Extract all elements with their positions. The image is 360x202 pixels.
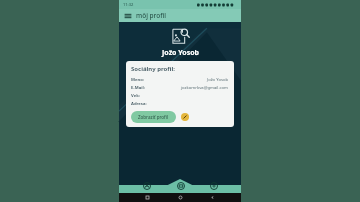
staticText: Adresa: [131,101,147,107]
button[interactable]: Recents [144,194,151,201]
staticText: Jožo Yosob [207,77,229,83]
staticText: E-Mail: [131,85,145,91]
button[interactable]: Settings [208,180,219,191]
staticText: Vek: [131,93,140,99]
button[interactable]: Messages [175,180,186,191]
staticText: Zobraziť profil [138,114,169,120]
button[interactable]: Open navigation menu [124,12,132,20]
staticText: Sociálny profil: [131,65,175,73]
button[interactable]: Edit profile [181,113,189,121]
staticText: jozkomrkva@gmail.com [181,85,229,91]
button[interactable]: Profile [141,180,152,191]
button[interactable]: Zobraziť profil [131,111,176,123]
button[interactable]: Back [209,194,216,201]
staticText: Jožo Yosob [162,48,199,58]
staticText: Meno: [131,77,144,83]
staticText: môj profil [136,11,167,20]
button[interactable]: Home [177,194,184,201]
staticText: 11:32 [123,2,134,7]
